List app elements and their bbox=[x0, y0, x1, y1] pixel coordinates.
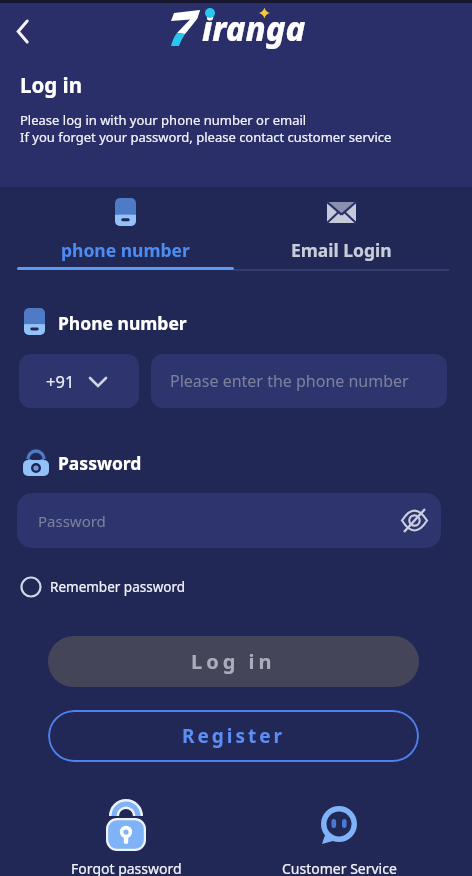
button[interactable]: Forgot password bbox=[46, 797, 206, 876]
staticText: Please log in with your phone number or … bbox=[20, 111, 307, 129]
staticText: Remember password bbox=[50, 578, 186, 596]
staticText: Password bbox=[58, 451, 142, 475]
staticText: Customer Service bbox=[282, 859, 397, 876]
staticText: +91 bbox=[46, 370, 75, 392]
staticText: Register bbox=[182, 723, 286, 749]
staticText: Password bbox=[38, 511, 106, 531]
button[interactable]: phone number bbox=[17, 190, 234, 270]
button[interactable]: Log in bbox=[48, 636, 419, 687]
button[interactable]: +91 bbox=[19, 354, 139, 408]
button[interactable]: Customer Service bbox=[259, 797, 419, 876]
button[interactable]: Password bbox=[17, 493, 441, 548]
staticText: Forgot password bbox=[71, 859, 182, 876]
staticText: If you forget your password, please cont… bbox=[20, 128, 392, 146]
button[interactable]: Email Login bbox=[234, 190, 449, 270]
button[interactable]: Register bbox=[48, 710, 419, 762]
staticText: phone number bbox=[61, 238, 190, 262]
button[interactable] bbox=[6, 14, 40, 48]
staticText: Email Login bbox=[291, 238, 392, 262]
staticText: Phone number bbox=[58, 311, 187, 335]
staticText: Log in bbox=[20, 71, 83, 99]
button[interactable]: Please enter the phone number bbox=[151, 354, 447, 408]
staticText: iranga bbox=[202, 6, 306, 50]
staticText: Log in bbox=[191, 648, 276, 675]
staticText: Please enter the phone number bbox=[170, 370, 409, 392]
button[interactable]: Remember password bbox=[20, 574, 186, 600]
